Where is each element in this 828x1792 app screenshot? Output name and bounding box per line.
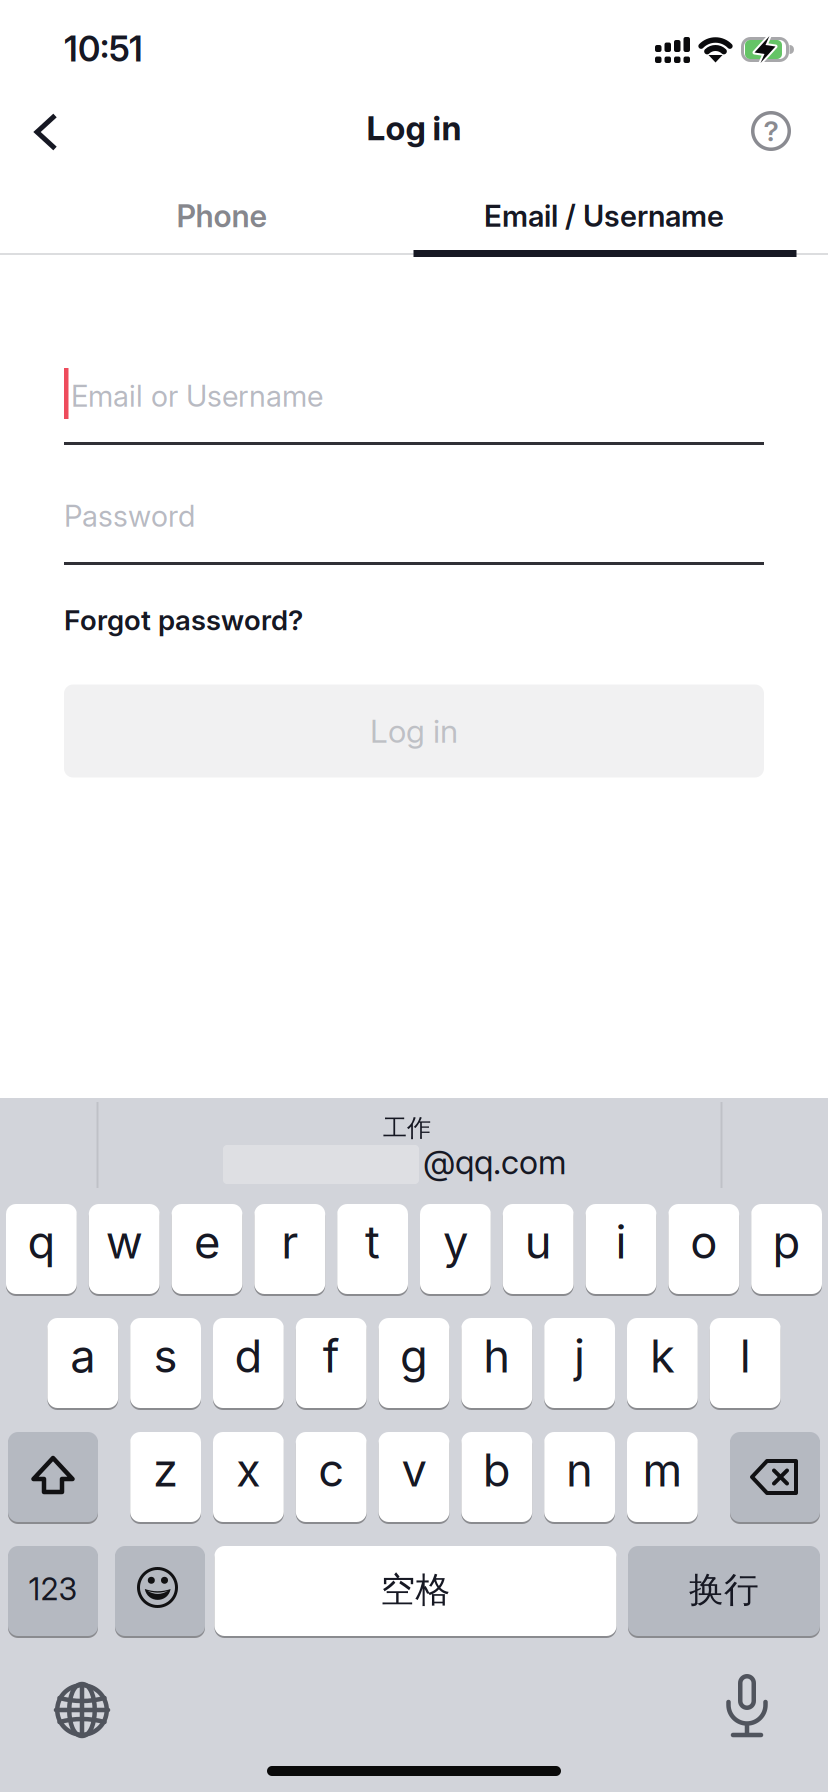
button[interactable]: b <box>461 1431 532 1523</box>
button[interactable]: w <box>89 1203 160 1295</box>
staticText: 123 <box>28 1571 77 1607</box>
staticText: Log in <box>370 712 458 750</box>
button[interactable]: Delete <box>730 1431 820 1523</box>
staticText: d <box>234 1329 262 1383</box>
staticText: Forgot password? <box>64 603 303 636</box>
staticText: b <box>483 1443 511 1497</box>
button[interactable]: Shift <box>8 1431 98 1523</box>
button[interactable]: u <box>503 1203 574 1295</box>
button[interactable]: s <box>130 1317 201 1409</box>
staticText: v <box>401 1443 426 1497</box>
button[interactable]: m <box>627 1431 698 1523</box>
button[interactable]: Back <box>16 110 76 154</box>
staticText: c <box>318 1443 344 1497</box>
button[interactable]: q <box>6 1203 77 1295</box>
staticText: k <box>650 1329 675 1383</box>
staticText: o <box>690 1215 717 1269</box>
button[interactable]: Next keyboard <box>42 1670 122 1750</box>
button[interactable]: p <box>751 1203 822 1295</box>
staticText: l <box>740 1329 751 1383</box>
button[interactable]: n <box>544 1431 615 1523</box>
button[interactable]: t <box>337 1203 408 1295</box>
staticText: h <box>483 1329 510 1383</box>
staticText: p <box>773 1215 801 1269</box>
staticText: n <box>566 1443 593 1497</box>
staticText: r <box>281 1215 298 1269</box>
staticText: m <box>642 1443 682 1497</box>
staticText: Log in <box>366 108 461 148</box>
staticText: i <box>615 1215 626 1269</box>
button[interactable]: 空格 <box>214 1545 616 1637</box>
staticText: Phone <box>176 198 267 234</box>
button[interactable]: x <box>213 1431 284 1523</box>
button[interactable]: e <box>172 1203 242 1295</box>
staticText: w <box>106 1215 143 1269</box>
button[interactable]: Log in <box>64 684 764 777</box>
button[interactable]: a <box>47 1317 118 1409</box>
button[interactable]: Help <box>743 103 799 159</box>
button[interactable]: Phone <box>15 176 429 256</box>
staticText: 空格 <box>380 1569 450 1611</box>
button[interactable]: j <box>544 1317 615 1409</box>
staticText: g <box>400 1329 428 1383</box>
button[interactable]: Email / Username <box>397 176 811 256</box>
button[interactable]: c <box>296 1431 367 1523</box>
button[interactable]: g <box>379 1317 449 1409</box>
button[interactable]: v <box>379 1431 449 1523</box>
button[interactable]: Emoji <box>115 1545 205 1637</box>
button[interactable]: h <box>461 1317 532 1409</box>
staticText: @qq.com <box>423 1142 566 1182</box>
button[interactable]: Forgot password? <box>64 603 464 636</box>
staticText: j <box>574 1329 585 1383</box>
button[interactable]: z <box>130 1431 201 1523</box>
button[interactable]: k <box>627 1317 698 1409</box>
button[interactable]: i <box>586 1203 656 1295</box>
button[interactable]: o <box>668 1203 739 1295</box>
staticText: ? <box>763 114 778 147</box>
staticText: e <box>194 1215 220 1269</box>
button[interactable]: Password <box>64 476 764 556</box>
button[interactable]: y <box>420 1203 491 1295</box>
staticText: x <box>236 1443 261 1497</box>
staticText: Email or Username <box>71 379 323 413</box>
staticText: 换行 <box>689 1569 759 1611</box>
button[interactable]: Email or Username <box>64 356 764 436</box>
staticText: s <box>154 1329 178 1383</box>
staticText: a <box>70 1329 95 1383</box>
staticText: u <box>525 1215 552 1269</box>
staticText: 10:51 <box>64 29 143 69</box>
staticText: Password <box>64 499 195 533</box>
button[interactable]: 123 <box>8 1545 98 1637</box>
staticText: q <box>27 1215 55 1269</box>
button[interactable]: Autofill suggestion <box>97 1099 717 1189</box>
button[interactable]: d <box>213 1317 284 1409</box>
button[interactable]: l <box>710 1317 781 1409</box>
button[interactable]: Dictation <box>707 1667 787 1747</box>
button[interactable]: f <box>296 1317 367 1409</box>
staticText: y <box>443 1215 468 1269</box>
staticText: 工作 <box>383 1113 431 1143</box>
staticText: Email / Username <box>484 199 724 233</box>
button[interactable]: r <box>254 1203 325 1295</box>
staticText: z <box>153 1443 178 1497</box>
staticText: t <box>365 1215 380 1269</box>
staticText: f <box>323 1329 340 1383</box>
button[interactable]: 换行 <box>628 1545 820 1637</box>
